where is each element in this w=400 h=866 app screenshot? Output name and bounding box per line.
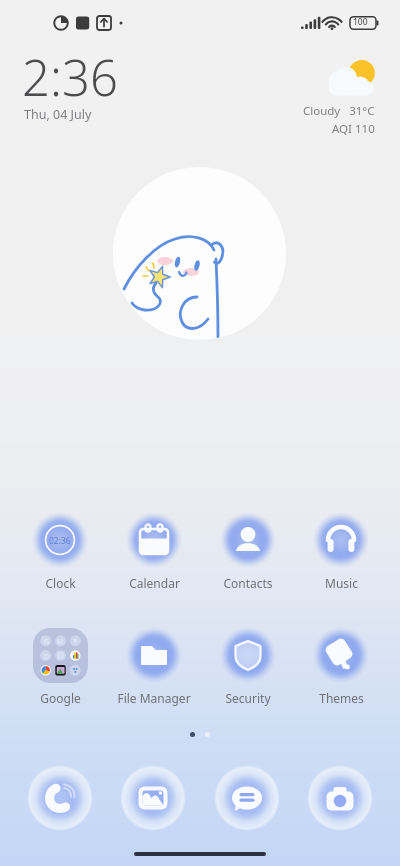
staticText: Clock <box>45 575 76 591</box>
staticText: Music <box>325 575 358 591</box>
staticText: Contacts <box>223 575 273 591</box>
button[interactable]: Gallery <box>120 765 186 831</box>
button[interactable]: Themes <box>295 626 387 706</box>
button[interactable]: Camera <box>307 765 373 831</box>
staticText: Security <box>225 690 271 706</box>
button[interactable]: Messages <box>214 765 280 831</box>
button[interactable]: Weather <box>292 52 382 140</box>
staticText: File Manager <box>117 690 191 706</box>
staticText: 100 <box>353 16 368 28</box>
staticText: Google <box>40 690 81 706</box>
staticText: 02:36 <box>49 535 71 547</box>
button[interactable]: Music <box>295 511 387 591</box>
button[interactable]: Security <box>201 626 295 706</box>
button[interactable]: Contacts <box>201 511 295 591</box>
staticText: AQI 110 <box>332 121 375 137</box>
button[interactable]: File Manager <box>107 626 201 706</box>
button[interactable]: Ghost character widget <box>113 167 286 340</box>
staticText: M <box>57 637 64 647</box>
staticText: Themes <box>319 690 364 706</box>
button[interactable]: G <box>13 626 107 706</box>
staticText: Calendar <box>129 575 180 591</box>
staticText: 2:36 <box>22 44 118 111</box>
staticText: D <box>44 652 50 662</box>
staticText: Thu, 04 July <box>24 106 92 123</box>
button[interactable]: Phone <box>27 765 93 831</box>
button[interactable]: 02:36 <box>13 511 107 591</box>
staticText: G <box>44 637 50 647</box>
button[interactable]: Calendar <box>107 511 201 591</box>
staticText: Cloudy 31°C <box>303 103 375 119</box>
